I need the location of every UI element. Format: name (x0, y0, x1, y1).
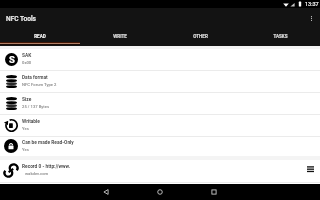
button[interactable]: S (0, 49, 320, 70)
staticText: WRITE (113, 34, 127, 39)
button[interactable]: WRITE (80, 29, 160, 46)
button[interactable]: Recents (187, 184, 241, 200)
staticText: NFC Forum Type 2 (22, 82, 57, 87)
button[interactable]: Reorder (304, 163, 316, 175)
staticText: Yes (22, 147, 29, 152)
staticText: 25 / 137 Bytes (22, 104, 50, 109)
button[interactable]: Record 0 - http://www. (0, 160, 320, 182)
button[interactable]: Size (0, 93, 320, 114)
button[interactable]: Writable (0, 115, 320, 136)
button[interactable]: Data format (0, 71, 320, 92)
staticText: NFC Tools (6, 15, 36, 23)
staticText: Record 0 - http://www. (22, 164, 71, 170)
button[interactable]: TASKS (240, 29, 320, 46)
button[interactable]: Can be made Read-Only (0, 137, 320, 156)
staticText: 0x00 (22, 60, 32, 65)
staticText: READ (34, 34, 46, 39)
button[interactable]: OTHER (160, 29, 240, 46)
button[interactable]: More options (302, 8, 320, 29)
button[interactable]: READ (0, 29, 80, 46)
staticText: S (9, 54, 15, 65)
staticText: Can be made Read-Only (22, 140, 74, 146)
staticText: Writable (22, 119, 40, 125)
staticText: Size (22, 97, 32, 103)
staticText: Data format (22, 75, 48, 81)
staticText: Yes (22, 126, 29, 131)
staticText: 13:37 (305, 1, 319, 7)
staticText: OTHER (193, 34, 208, 39)
staticText: SAK (22, 53, 32, 59)
button[interactable]: Back (79, 184, 133, 200)
staticText: wakdev.com (25, 171, 49, 176)
button[interactable]: Home (133, 184, 187, 200)
staticText: TASKS (273, 34, 288, 39)
